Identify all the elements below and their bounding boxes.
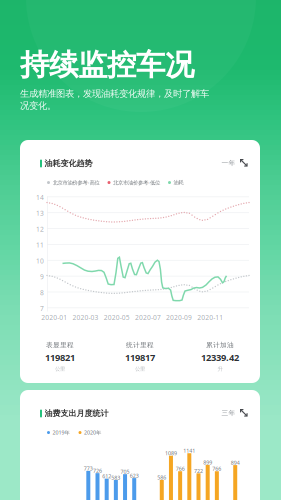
staticText: 894 — [231, 459, 240, 466]
staticText: 表显里程 — [46, 341, 74, 349]
staticText: 12339.42 — [201, 351, 239, 364]
staticText: 11 — [36, 241, 44, 249]
staticText: 12 — [36, 225, 44, 234]
staticText: 705 — [120, 468, 129, 475]
staticText: 10 — [36, 256, 44, 265]
staticText: 8 — [40, 288, 44, 297]
staticText: 2020-09 — [166, 313, 192, 322]
staticText: 2020-01 — [41, 313, 67, 322]
staticText: 2020-05 — [104, 313, 130, 322]
staticText: 2020年 — [84, 429, 101, 436]
staticText: 油费支出月度统计 — [44, 408, 108, 418]
staticText: 统计里程 — [126, 341, 154, 349]
staticText: 722 — [194, 467, 203, 474]
staticText: 公里 — [135, 366, 145, 372]
staticText: 升 — [217, 366, 222, 372]
staticText: 油耗 — [173, 179, 183, 186]
staticText: 1141 — [183, 447, 195, 454]
staticText: 累计加油 — [206, 341, 234, 349]
staticText: 2020-07 — [135, 313, 161, 322]
staticText: 2019年 — [52, 429, 69, 436]
staticText: 持续监控车况 — [20, 47, 194, 83]
staticText: 766 — [176, 465, 185, 472]
button[interactable]: 三年 — [212, 406, 248, 420]
staticText: 586 — [157, 474, 166, 481]
staticText: 一年 — [221, 159, 235, 167]
staticText: 7 — [40, 304, 44, 313]
staticText: 生成精准图表，发现油耗变化规律，及时了解车 — [20, 88, 209, 99]
staticText: 899 — [203, 459, 212, 466]
staticText: 583 — [111, 474, 120, 481]
staticText: 油耗变化趋势 — [44, 158, 92, 168]
button[interactable]: 一年 — [212, 156, 248, 170]
staticText: 2020-11 — [197, 313, 223, 322]
staticText: 766 — [212, 465, 221, 472]
staticText: 公里 — [55, 366, 65, 372]
staticText: 612 — [102, 473, 111, 480]
staticText: 北京市油价参考-低位 — [113, 179, 160, 186]
staticText: 623 — [130, 472, 139, 479]
staticText: 14 — [36, 193, 44, 202]
staticText: 2020-03 — [72, 313, 98, 322]
staticText: 况变化。 — [20, 100, 56, 111]
staticText: 119817 — [125, 351, 155, 364]
staticText: 1089 — [165, 450, 177, 457]
staticText: 北京市油价参考-高位 — [52, 179, 99, 186]
staticText: 三年 — [221, 409, 235, 417]
staticText: 726 — [93, 467, 102, 474]
staticText: 119821 — [45, 351, 75, 364]
staticText: 13 — [36, 209, 44, 218]
staticText: 9 — [40, 272, 44, 281]
staticText: 773 — [84, 465, 93, 472]
